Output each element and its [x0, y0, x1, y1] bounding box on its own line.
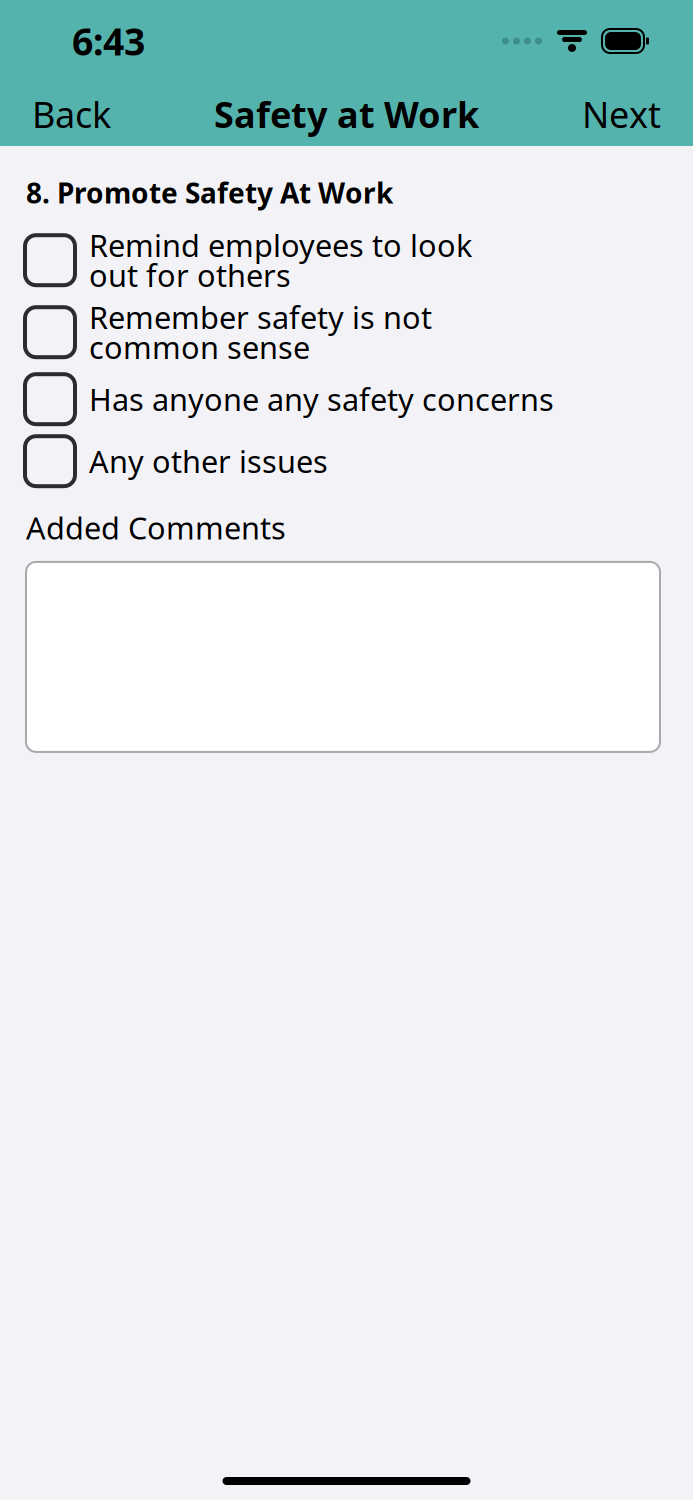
button[interactable]: Any other issues [25, 433, 665, 489]
button[interactable]: Added Comments text field [26, 562, 660, 752]
button[interactable]: Remind employees to look [25, 227, 665, 293]
staticText: Added Comments [26, 507, 286, 548]
button[interactable]: Next [550, 82, 693, 146]
button[interactable]: Has anyone any safety concerns [25, 371, 665, 427]
staticText: Back [32, 90, 111, 138]
staticText: out for others [89, 255, 291, 295]
button[interactable]: Back [0, 82, 143, 146]
staticText: Safety at Work [214, 90, 479, 138]
staticText: Next [582, 90, 661, 138]
staticText: Remind employees to look [89, 225, 472, 265]
staticText: Any other issues [89, 441, 328, 481]
staticText: common sense [89, 327, 310, 367]
staticText: 8. Promote Safety At Work [26, 174, 393, 211]
staticText: Has anyone any safety concerns [89, 379, 554, 419]
staticText: Remember safety is not [89, 297, 432, 337]
staticText: 6:43 [72, 16, 145, 66]
button[interactable]: Remember safety is not [25, 299, 665, 365]
